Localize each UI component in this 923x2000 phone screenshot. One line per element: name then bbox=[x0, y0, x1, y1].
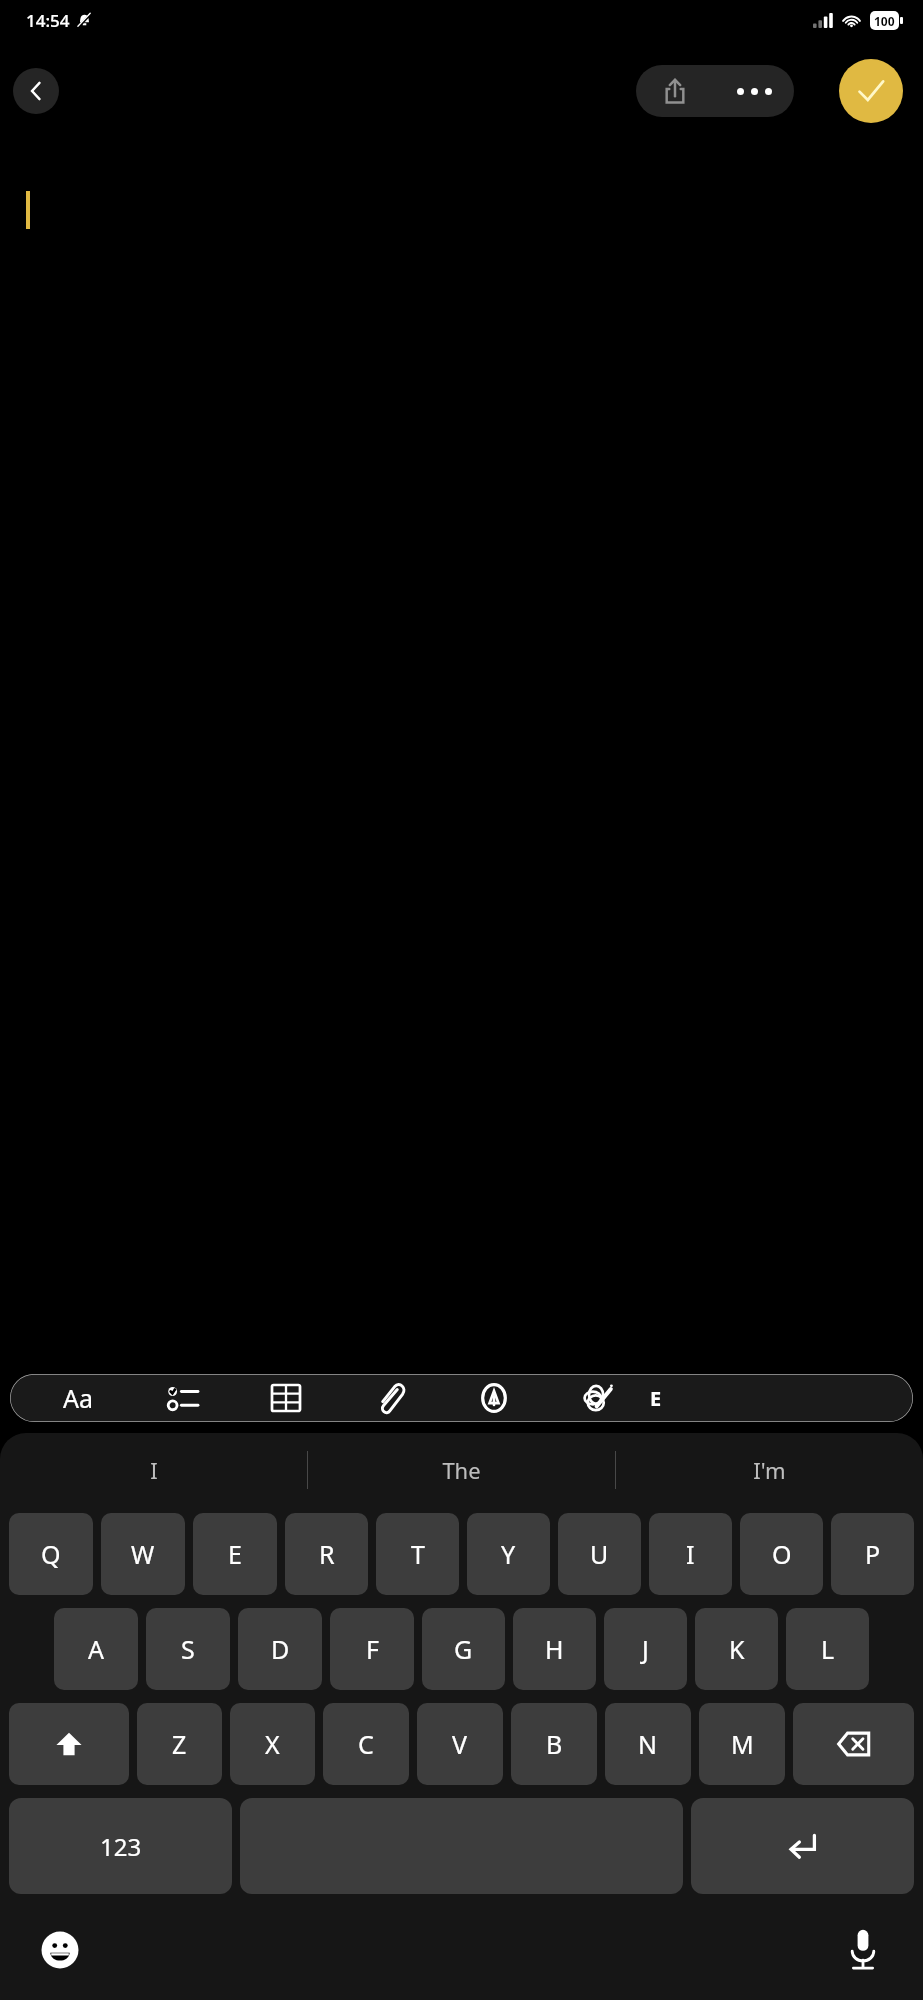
staticText: M bbox=[731, 1727, 754, 1761]
button[interactable]: The bbox=[308, 1433, 615, 1507]
button[interactable]: O bbox=[740, 1513, 823, 1595]
staticText: X bbox=[265, 1727, 280, 1761]
button[interactable]: G bbox=[422, 1608, 505, 1690]
staticText: J bbox=[642, 1632, 649, 1666]
button[interactable]: J bbox=[604, 1608, 687, 1690]
button[interactable]: X bbox=[230, 1703, 315, 1785]
staticText: W bbox=[131, 1537, 155, 1571]
button[interactable]: Share bbox=[636, 65, 714, 117]
button[interactable]: Text format bbox=[26, 1374, 130, 1422]
button[interactable]: Z bbox=[137, 1703, 222, 1785]
button[interactable]: L bbox=[786, 1608, 869, 1690]
button[interactable]: I bbox=[0, 1433, 307, 1507]
staticText: Y bbox=[501, 1537, 516, 1571]
staticText: 100 bbox=[874, 13, 895, 29]
staticText: S bbox=[181, 1632, 195, 1666]
staticText: Z bbox=[172, 1727, 187, 1761]
staticText: L bbox=[821, 1632, 835, 1666]
button[interactable]: V bbox=[417, 1703, 503, 1785]
button[interactable]: Attach bbox=[338, 1374, 442, 1422]
staticText: I'm bbox=[753, 1455, 786, 1485]
button[interactable]: M bbox=[699, 1703, 785, 1785]
staticText: O bbox=[772, 1537, 792, 1571]
button[interactable]: P bbox=[831, 1513, 914, 1595]
staticText: T bbox=[411, 1537, 425, 1571]
button[interactable]: Effects bbox=[546, 1374, 650, 1422]
button[interactable]: Enter bbox=[691, 1798, 914, 1894]
button[interactable]: Shift bbox=[9, 1703, 129, 1785]
button[interactable]: T bbox=[376, 1513, 459, 1595]
staticText: Q bbox=[41, 1537, 61, 1571]
button[interactable]: Voice input bbox=[837, 1924, 889, 1976]
staticText: A bbox=[88, 1632, 104, 1666]
staticText: 123 bbox=[100, 1830, 142, 1863]
button[interactable]: Back bbox=[13, 68, 59, 114]
button[interactable]: 123 bbox=[9, 1798, 232, 1894]
staticText: I bbox=[686, 1537, 695, 1571]
staticText: The bbox=[442, 1455, 481, 1485]
staticText: U bbox=[590, 1537, 609, 1571]
button[interactable]: H bbox=[513, 1608, 596, 1690]
staticText: P bbox=[865, 1537, 881, 1571]
button[interactable]: D bbox=[238, 1608, 322, 1690]
button[interactable]: I bbox=[649, 1513, 732, 1595]
button[interactable]: More bbox=[650, 1374, 684, 1422]
staticText: D bbox=[271, 1632, 290, 1666]
button[interactable]: Draw bbox=[442, 1374, 546, 1422]
button[interactable]: A bbox=[54, 1608, 138, 1690]
staticText: I bbox=[150, 1455, 158, 1485]
button[interactable]: C bbox=[323, 1703, 409, 1785]
staticText: R bbox=[319, 1537, 335, 1571]
staticText: N bbox=[638, 1727, 658, 1761]
button[interactable]: K bbox=[695, 1608, 778, 1690]
staticText: K bbox=[729, 1632, 745, 1666]
button[interactable]: Done bbox=[839, 59, 903, 123]
button[interactable]: F bbox=[330, 1608, 414, 1690]
button[interactable]: I'm bbox=[616, 1433, 923, 1507]
button[interactable]: W bbox=[101, 1513, 185, 1595]
button[interactable]: U bbox=[558, 1513, 641, 1595]
staticText: B bbox=[546, 1727, 563, 1761]
button[interactable]: Table bbox=[234, 1374, 338, 1422]
button[interactable]: Backspace bbox=[793, 1703, 914, 1785]
button[interactable]: Q bbox=[9, 1513, 93, 1595]
staticText: F bbox=[366, 1632, 379, 1666]
staticText: E bbox=[228, 1537, 242, 1571]
button[interactable]: Checklist bbox=[130, 1374, 234, 1422]
staticText: C bbox=[358, 1727, 374, 1761]
button[interactable]: Y bbox=[467, 1513, 550, 1595]
staticText: Aa bbox=[63, 1381, 94, 1415]
staticText: E bbox=[650, 1385, 662, 1412]
staticText: 14:54 bbox=[26, 9, 70, 32]
staticText: V bbox=[452, 1727, 468, 1761]
staticText: H bbox=[545, 1632, 564, 1666]
button[interactable]: B bbox=[511, 1703, 597, 1785]
staticText: G bbox=[454, 1632, 473, 1666]
button[interactable]: E bbox=[193, 1513, 277, 1595]
button[interactable]: Emoji bbox=[34, 1924, 86, 1976]
button[interactable]: S bbox=[146, 1608, 230, 1690]
button[interactable]: N bbox=[605, 1703, 691, 1785]
button[interactable]: More options bbox=[714, 65, 794, 117]
button[interactable]: R bbox=[285, 1513, 368, 1595]
